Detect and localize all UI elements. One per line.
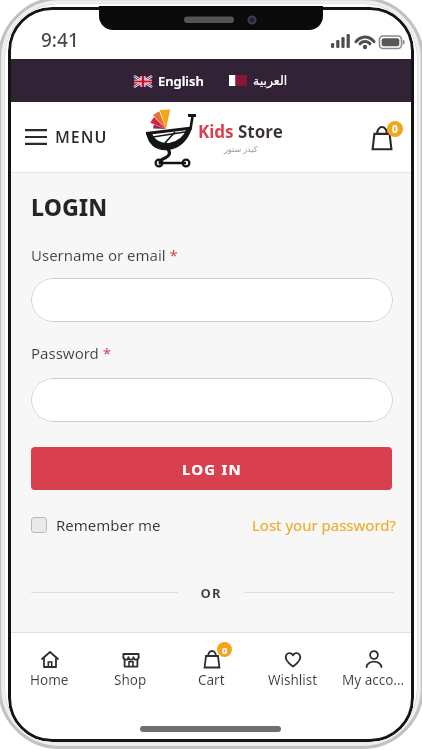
staticText: 0 — [222, 644, 228, 656]
staticText: Cart — [198, 671, 225, 689]
staticText: MENU — [55, 126, 108, 148]
button[interactable] — [31, 378, 393, 422]
staticText: LOG IN — [182, 459, 242, 479]
staticText: LOGIN — [31, 191, 108, 222]
button[interactable]: 0 — [372, 121, 403, 150]
staticText: English — [158, 72, 204, 90]
staticText: 9:41 — [41, 27, 79, 53]
staticText: Password * — [31, 343, 112, 363]
staticText: Home — [30, 671, 69, 689]
button[interactable]: Remember me — [31, 515, 161, 535]
staticText: Wishlist — [268, 671, 318, 689]
button[interactable]: English — [134, 72, 204, 90]
button[interactable]: Shop — [90, 647, 171, 689]
button[interactable]: Lost your password? — [252, 515, 397, 535]
button[interactable]: Wishlist — [252, 647, 333, 689]
button[interactable]: MENU — [25, 126, 108, 148]
button[interactable]: 0 — [171, 647, 252, 689]
staticText: OR — [8, 584, 414, 602]
staticText: Remember me — [56, 515, 161, 535]
button[interactable]: العربية — [229, 73, 288, 88]
staticText: Store — [238, 120, 283, 143]
staticText: العربية — [253, 73, 288, 88]
button[interactable] — [31, 278, 393, 322]
button[interactable]: Home — [8, 647, 90, 689]
button[interactable]: LOG IN — [31, 447, 392, 490]
staticText: Username or email * — [31, 245, 178, 265]
staticText: Kids — [198, 120, 234, 143]
staticText: My acco... — [342, 671, 405, 689]
staticText: كيدز ستور — [224, 143, 258, 154]
staticText: Shop — [114, 671, 147, 689]
button[interactable]: My acco... — [333, 647, 414, 689]
staticText: 0 — [392, 122, 398, 136]
